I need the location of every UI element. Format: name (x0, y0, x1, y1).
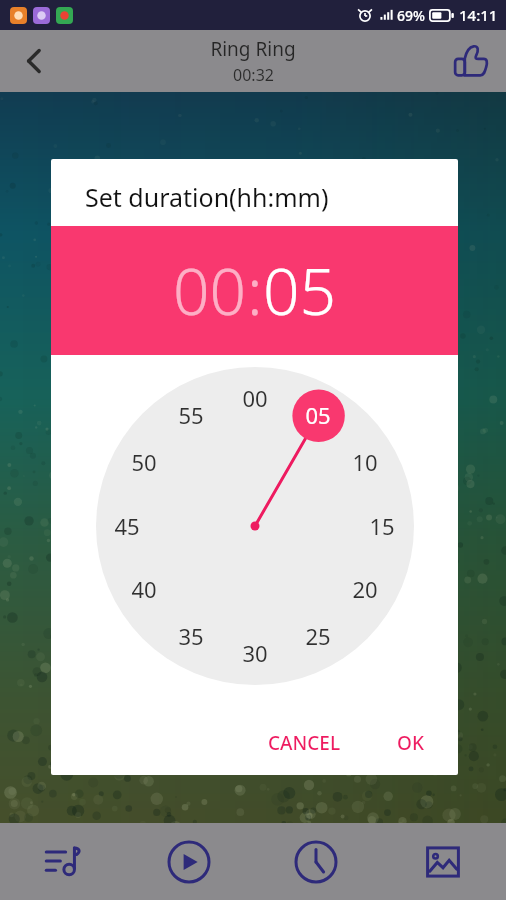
button[interactable]: Back (6, 32, 64, 90)
staticText: 00 (173, 247, 247, 334)
button[interactable]: 05 (263, 247, 337, 334)
button[interactable]: 00 (173, 247, 247, 334)
staticText: 45 (114, 511, 140, 541)
staticText: 15 (369, 511, 395, 541)
staticText: 14:11 (459, 5, 498, 25)
staticText: 00 (242, 383, 268, 413)
staticText: 30 (242, 638, 268, 668)
staticText: Set duration(hh:mm) (85, 180, 329, 214)
button[interactable]: Like (440, 32, 498, 90)
staticText: 55 (178, 400, 204, 430)
staticText: 69% (397, 6, 425, 25)
staticText: 05 (305, 400, 331, 430)
button[interactable]: Playlist (0, 823, 126, 900)
button[interactable]: OK (385, 722, 436, 764)
staticText: Ring Ring (210, 36, 296, 62)
staticText: 10 (352, 447, 378, 477)
staticText: : (247, 247, 263, 334)
button[interactable]: Play (126, 823, 252, 900)
staticText: 05 (263, 247, 337, 334)
staticText: OK (397, 730, 424, 756)
staticText: 40 (131, 574, 157, 604)
staticText: 00:32 (233, 64, 274, 86)
button[interactable]: Timer (252, 823, 379, 900)
staticText: 20 (352, 574, 378, 604)
staticText: CANCEL (268, 730, 341, 756)
button[interactable]: 00 (96, 367, 414, 685)
staticText: 25 (305, 621, 331, 651)
button[interactable]: CANCEL (256, 722, 353, 764)
button[interactable]: Gallery (379, 823, 506, 900)
staticText: 50 (131, 447, 157, 477)
staticText: 35 (178, 621, 204, 651)
